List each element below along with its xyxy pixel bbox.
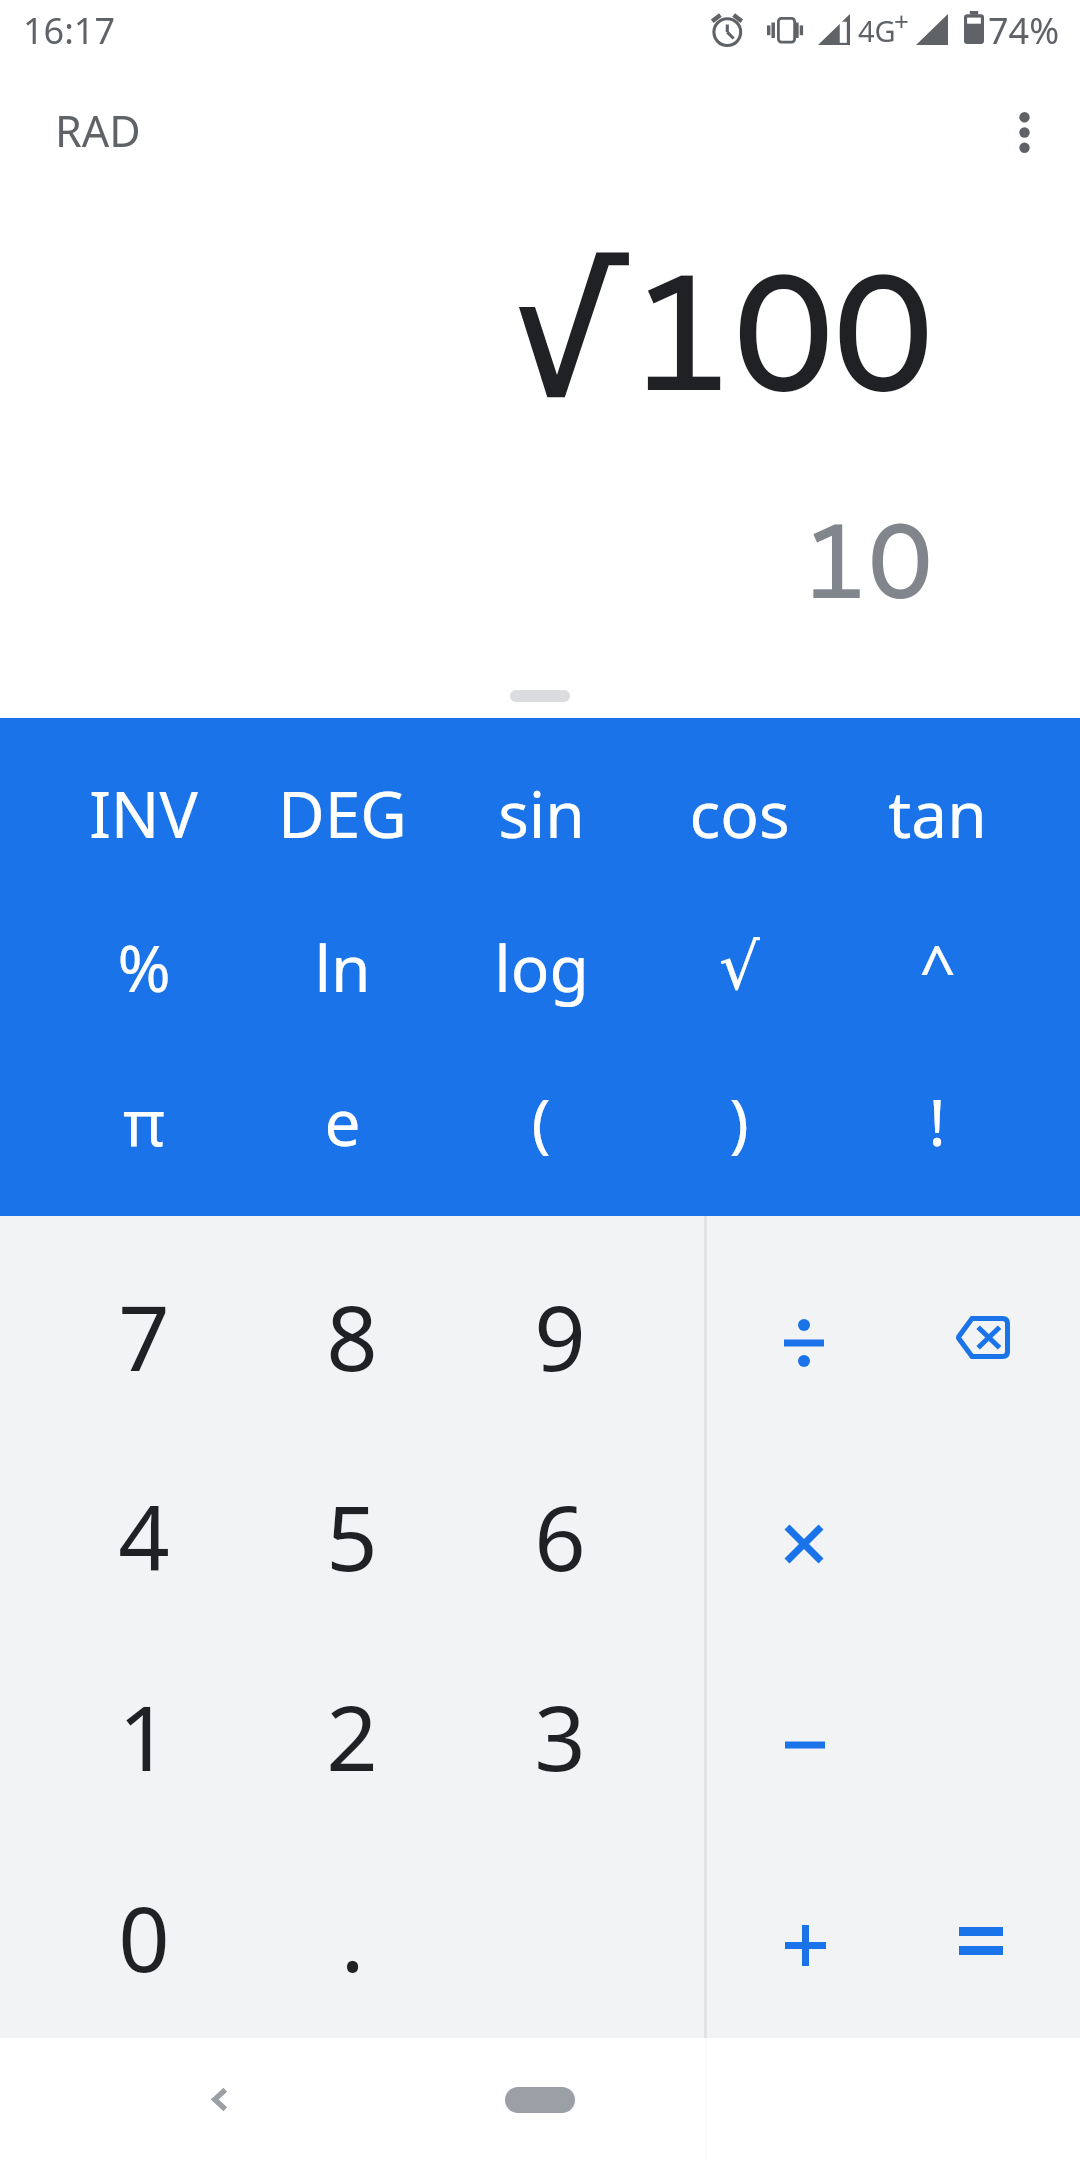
staticText: log <box>494 924 589 1011</box>
button[interactable]: 9 <box>456 1236 664 1436</box>
staticText: π <box>123 1078 165 1165</box>
button[interactable]: Expand keypad <box>478 674 602 718</box>
button[interactable]: . <box>248 1837 456 2038</box>
button[interactable]: Home <box>460 2039 620 2160</box>
staticText: 7 <box>118 1275 170 1398</box>
button[interactable]: 8 <box>248 1236 456 1436</box>
staticText: 74% <box>988 6 1060 55</box>
staticText: 10 <box>0 498 932 625</box>
button[interactable]: 1 <box>40 1636 248 1837</box>
staticText: 0 <box>118 1876 170 1999</box>
staticText: 16:17 <box>23 6 116 55</box>
staticText: 9 <box>534 1275 586 1398</box>
staticText: 4G <box>858 11 896 50</box>
staticText: 8 <box>326 1275 378 1398</box>
button[interactable]: Multiply <box>720 1436 893 1636</box>
staticText: 100 <box>0 233 933 432</box>
staticText: ln <box>314 924 371 1011</box>
button[interactable]: ln <box>243 890 442 1044</box>
staticText: 2 <box>326 1675 378 1798</box>
button[interactable]: Back <box>160 2039 280 2160</box>
staticText: RAD <box>55 101 141 160</box>
button[interactable]: Minus <box>720 1636 893 1837</box>
button[interactable]: tan <box>838 737 1036 890</box>
button[interactable]: 5 <box>248 1436 456 1636</box>
staticText: tan <box>888 770 987 857</box>
button[interactable]: sin <box>442 737 640 890</box>
button[interactable]: cos <box>640 737 838 890</box>
staticText: + <box>894 3 909 38</box>
button[interactable]: π <box>44 1044 243 1198</box>
staticText: 4 <box>118 1475 170 1598</box>
staticText: INV <box>89 770 198 857</box>
button[interactable]: ^ <box>838 890 1036 1044</box>
staticText: e <box>324 1078 361 1165</box>
staticText: ^ <box>919 924 956 1011</box>
button[interactable]: ) <box>640 1044 838 1198</box>
button[interactable]: INV <box>44 737 243 890</box>
staticText: cos <box>689 770 790 857</box>
staticText: % <box>117 924 171 1011</box>
staticText: 3 <box>534 1675 586 1798</box>
staticText: ) <box>729 1078 749 1165</box>
button[interactable]: More options <box>976 84 1072 180</box>
staticText: 5 <box>326 1475 378 1598</box>
button[interactable]: ! <box>838 1044 1036 1198</box>
staticText: √ <box>719 930 760 1005</box>
button[interactable]: % <box>44 890 243 1044</box>
button[interactable]: Equals <box>893 1837 1067 2038</box>
staticText: DEG <box>278 770 407 857</box>
button[interactable]: Delete <box>893 1236 1067 1436</box>
button[interactable]: 0 <box>40 1837 248 2038</box>
button[interactable]: 2 <box>248 1636 456 1837</box>
staticText: ( <box>531 1078 551 1165</box>
button[interactable]: 6 <box>456 1436 664 1636</box>
button[interactable]: e <box>243 1044 442 1198</box>
staticText: sin <box>498 770 585 857</box>
button[interactable]: Divide <box>720 1236 893 1436</box>
button[interactable]: Plus <box>720 1837 893 2038</box>
button[interactable]: log <box>442 890 640 1044</box>
staticText: . <box>340 1876 365 1999</box>
button[interactable]: 4 <box>40 1436 248 1636</box>
staticText: ! <box>928 1078 946 1165</box>
button[interactable]: DEG <box>243 737 442 890</box>
button[interactable]: 7 <box>40 1236 248 1436</box>
button[interactable]: √ <box>640 890 838 1044</box>
button[interactable]: ( <box>442 1044 640 1198</box>
button[interactable]: 3 <box>456 1636 664 1837</box>
staticText: 6 <box>534 1475 586 1598</box>
button[interactable]: RAD <box>23 83 173 178</box>
staticText: 1 <box>118 1675 170 1798</box>
